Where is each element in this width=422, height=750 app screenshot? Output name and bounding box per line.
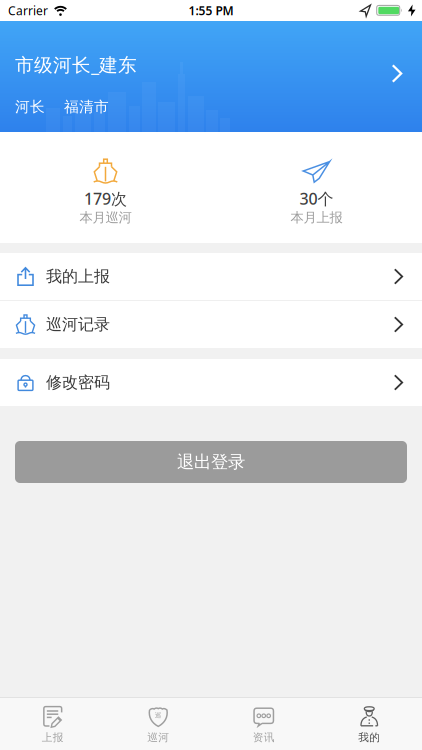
staticText: 市级河长_建东: [15, 52, 137, 77]
staticText: 本月上报: [290, 209, 342, 226]
staticText: 退出登录: [177, 451, 245, 473]
staticText: 巡河记录: [46, 315, 110, 334]
button[interactable]: 巡河: [105, 698, 211, 750]
staticText: 巡: [155, 711, 162, 719]
staticText: 巡河: [147, 731, 169, 744]
button[interactable]: 退出登录: [15, 441, 407, 483]
staticText: 我的上报: [46, 267, 110, 286]
staticText: 我的: [358, 731, 380, 744]
button[interactable]: 修改密码: [0, 359, 422, 406]
button[interactable]: 市级河长_建东: [0, 21, 422, 132]
staticText: 30个: [299, 188, 333, 209]
staticText: Carrier: [8, 2, 48, 18]
staticText: 179次: [84, 188, 127, 209]
staticText: 河长: [15, 98, 45, 116]
staticText: 资讯: [253, 731, 275, 744]
staticText: 1:55 PM: [188, 2, 233, 18]
button[interactable]: 上报: [0, 698, 105, 750]
button[interactable]: 我的上报: [0, 253, 422, 300]
staticText: 福清市: [64, 98, 109, 116]
button[interactable]: 我的: [316, 698, 422, 750]
button[interactable]: 资讯: [211, 698, 316, 750]
staticText: 上报: [42, 731, 64, 744]
staticText: 本月巡河: [79, 209, 131, 226]
staticText: 修改密码: [46, 373, 110, 392]
button[interactable]: 巡河记录: [0, 301, 422, 348]
